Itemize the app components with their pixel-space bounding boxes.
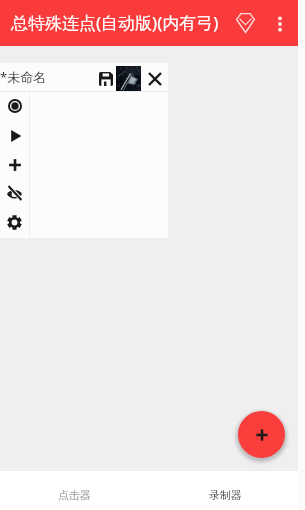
staticText: *未命名 <box>0 68 47 86</box>
button[interactable]: Close <box>145 69 164 88</box>
button[interactable]: Add <box>238 411 285 458</box>
button[interactable]: Record <box>0 91 29 120</box>
staticText: 录制器 <box>209 488 242 502</box>
staticText: 点击器 <box>58 488 91 502</box>
button[interactable]: 点击器 <box>0 471 149 510</box>
button[interactable]: Preview <box>116 66 141 91</box>
button[interactable]: Save <box>96 69 115 88</box>
button[interactable]: 录制器 <box>149 471 298 510</box>
button[interactable]: Hide <box>0 179 29 208</box>
button[interactable]: Settings <box>0 208 29 237</box>
button[interactable]: Play <box>0 121 29 150</box>
button[interactable]: More options <box>266 9 295 38</box>
staticText: 总特殊连点(自动版)(内有弓) <box>11 11 219 34</box>
button[interactable]: Premium <box>231 8 260 37</box>
button[interactable]: Add <box>0 150 29 179</box>
